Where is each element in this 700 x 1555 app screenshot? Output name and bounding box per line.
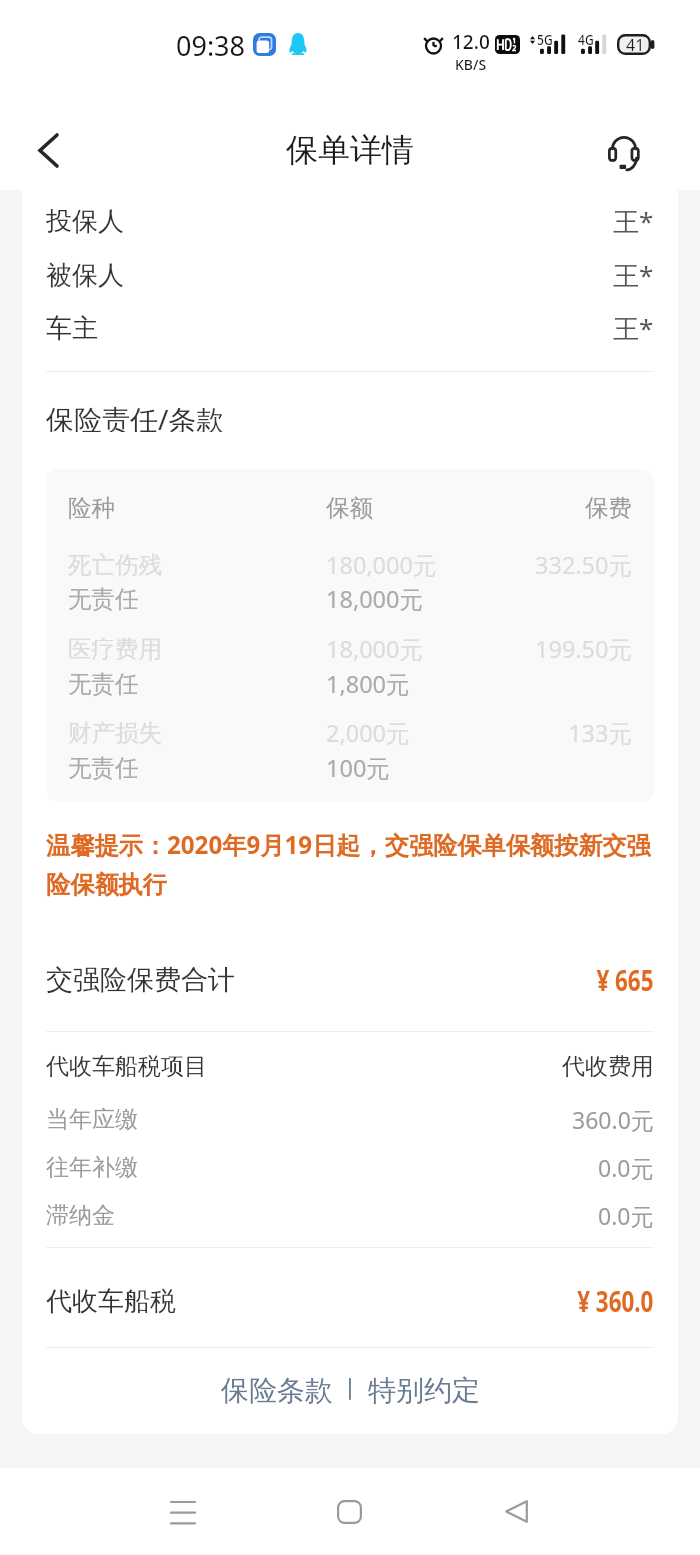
button[interactable]: 被保人	[46, 248, 654, 302]
staticText: 投保人	[46, 205, 124, 238]
staticText: KB/S	[455, 55, 487, 74]
staticText: 360.0元	[572, 1104, 654, 1135]
staticText: 当年应缴	[46, 1105, 138, 1134]
staticText: 被保人	[46, 259, 124, 292]
staticText: 2,000元	[326, 717, 410, 749]
staticText: 199.50元	[534, 633, 632, 665]
staticText: 133元	[568, 717, 632, 749]
staticText: 1,800元	[326, 668, 410, 700]
staticText: 332.50元	[534, 549, 632, 581]
staticText: 180,000元	[326, 549, 437, 581]
staticText: 100元	[326, 752, 390, 784]
staticText: 医疗费用	[68, 634, 162, 664]
button[interactable]: Back	[462, 1468, 572, 1555]
staticText: ¥ 360.0	[577, 1282, 654, 1320]
staticText: 代收车船税项目	[46, 1052, 207, 1081]
staticText: 18,000元	[326, 583, 424, 615]
staticText: 无责任	[68, 669, 139, 699]
staticText: 王*	[613, 257, 654, 293]
staticText: 往年补缴	[46, 1153, 138, 1182]
button[interactable]: Recent apps	[128, 1468, 238, 1555]
button[interactable]: 车主	[46, 301, 654, 355]
staticText: 保费	[585, 493, 632, 523]
staticText: 代收车船税	[46, 1285, 176, 1318]
staticText: 0.0元	[598, 1152, 654, 1183]
button[interactable]: 特别约定	[362, 1373, 486, 1405]
button[interactable]: Home	[295, 1468, 405, 1555]
button[interactable]: Back	[14, 118, 80, 182]
staticText: 18,000元	[326, 633, 424, 665]
staticText: 保额	[326, 493, 373, 523]
staticText: 代收费用	[562, 1052, 654, 1081]
staticText: 41	[626, 34, 645, 55]
staticText: 09:38	[176, 27, 246, 64]
staticText: 保单详情	[286, 130, 414, 170]
staticText: 特别约定	[368, 1373, 480, 1405]
staticText: 无责任	[68, 753, 139, 783]
button[interactable]: 投保人	[46, 194, 654, 248]
staticText: 交强险保费合计	[46, 963, 235, 997]
staticText: 死亡伤残	[68, 550, 162, 580]
staticText: 0.0元	[598, 1200, 654, 1231]
staticText: 保险条款	[221, 1373, 333, 1405]
staticText: 丨	[339, 1375, 362, 1404]
button[interactable]: 保险条款	[215, 1373, 339, 1405]
staticText: 12.0	[452, 29, 490, 55]
staticText: 4G	[578, 30, 594, 49]
staticText: 无责任	[68, 584, 139, 614]
staticText: 温馨提示：2020年9月19日起，交强险保单保额按新交强险保额执行	[46, 828, 654, 901]
staticText: ¥ 665	[596, 961, 654, 999]
staticText: 王*	[613, 310, 654, 346]
staticText: 5G	[537, 30, 553, 49]
staticText: 滞纳金	[46, 1201, 115, 1230]
staticText: 车主	[46, 312, 98, 345]
staticText: 保险责任/条款	[46, 400, 225, 432]
staticText: 险种	[68, 493, 115, 523]
button[interactable]: Customer service	[594, 120, 654, 182]
staticText: 财产损失	[68, 718, 162, 748]
staticText: 王*	[613, 203, 654, 239]
